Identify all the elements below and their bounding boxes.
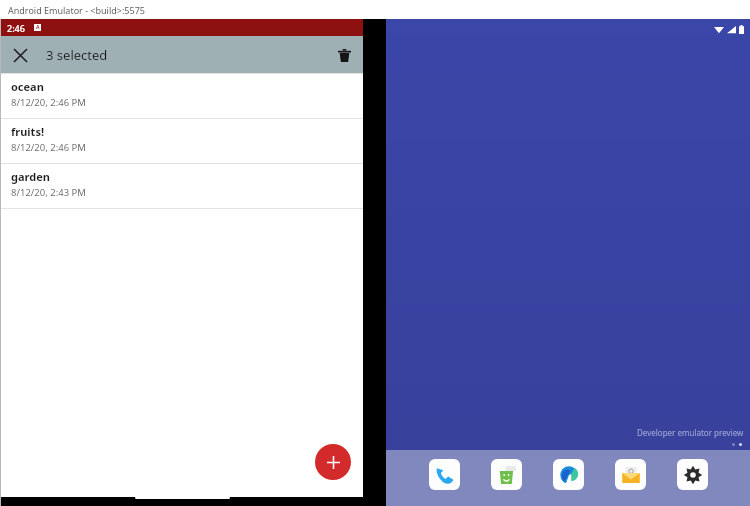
staticText: A — [36, 24, 40, 31]
staticText: Developer emulator preview — [637, 427, 744, 438]
staticText: 8/12/20, 2:46 PM — [11, 141, 86, 154]
staticText: garden — [11, 169, 50, 184]
staticText: 2:46 — [7, 22, 25, 34]
staticText: ocean — [11, 79, 44, 94]
button[interactable]: garden — [1, 163, 363, 208]
staticText: 8/12/20, 2:43 PM — [11, 186, 86, 199]
button[interactable]: ocean — [1, 73, 363, 118]
staticText: 3 selected — [46, 46, 108, 64]
button[interactable]: Add note — [315, 444, 351, 480]
button[interactable]: Store — [491, 459, 522, 490]
button[interactable]: Settings — [677, 459, 708, 490]
button[interactable]: Delete — [330, 41, 358, 69]
button[interactable]: Edge browser — [553, 459, 584, 490]
staticText: 8/12/20, 2:46 PM — [11, 96, 86, 109]
button[interactable]: fruits! — [1, 118, 363, 163]
staticText: Android Emulator - <build>:5575 — [8, 4, 145, 16]
button[interactable]: Close selection — [6, 41, 34, 69]
button[interactable]: Email — [615, 459, 646, 490]
staticText: fruits! — [11, 124, 45, 139]
button[interactable]: Phone — [429, 459, 460, 490]
